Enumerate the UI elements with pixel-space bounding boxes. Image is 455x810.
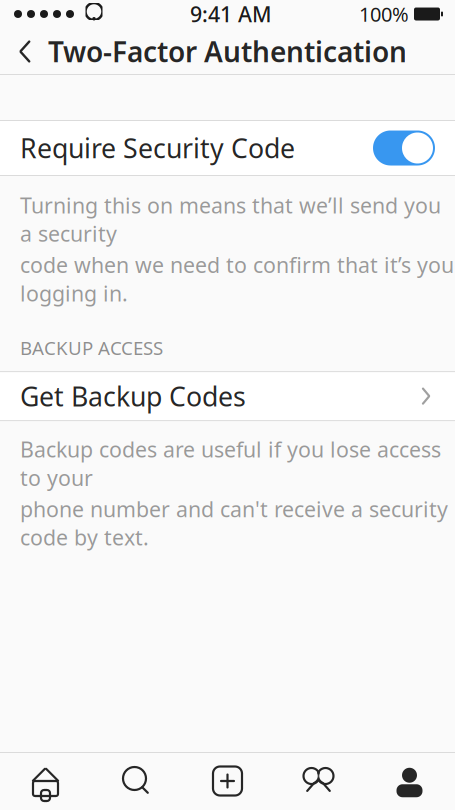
staticText: Require Security Code [20, 130, 295, 166]
staticText: Two-Factor Authentication [48, 33, 407, 70]
staticText: Backup codes are useful if you lose acce… [20, 435, 441, 492]
button[interactable]: Home [0, 752, 91, 810]
button[interactable]: Profile [364, 752, 455, 810]
button[interactable]: Require Security Code [0, 120, 455, 176]
staticText: Turning this on means that we’ll send yo… [20, 191, 441, 248]
button[interactable]: Activity [273, 752, 364, 810]
staticText: code when we need to confirm that it’s y… [20, 251, 454, 307]
button[interactable]: Search [91, 752, 182, 810]
button[interactable]: New Post [182, 752, 273, 810]
staticText: 100% [359, 1, 409, 27]
staticText: Get Backup Codes [20, 378, 246, 414]
button[interactable]: Back [0, 28, 50, 75]
staticText: phone number and can't receive a securit… [20, 495, 448, 551]
staticText: 9:41 AM [190, 0, 272, 28]
staticText: BACKUP ACCESS [20, 335, 163, 360]
button[interactable]: Get Backup Codes [0, 371, 455, 421]
